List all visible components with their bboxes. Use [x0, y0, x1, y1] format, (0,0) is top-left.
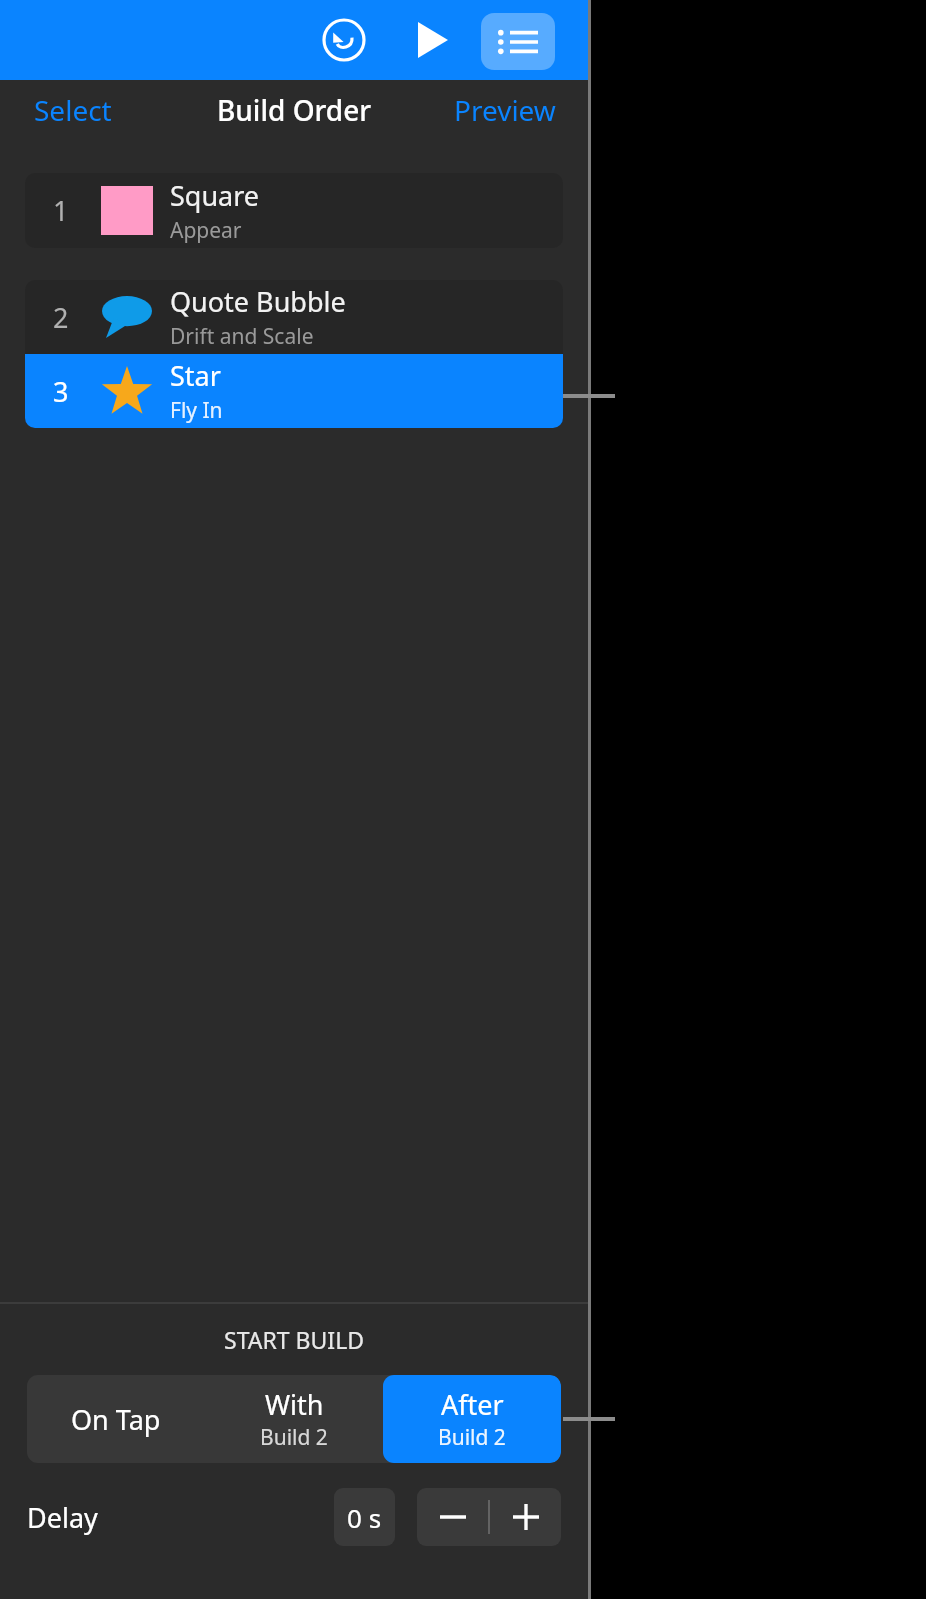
staticText: Drift and Scale [170, 322, 314, 351]
staticText: On Tap [71, 1401, 161, 1438]
staticText: 1 [53, 192, 69, 229]
button[interactable]: Select [16, 83, 130, 137]
button[interactable]: 1 [25, 173, 563, 248]
staticText: START BUILD [224, 1324, 364, 1355]
staticText: Fly In [170, 396, 223, 425]
button[interactable]: 0 s [334, 1488, 395, 1546]
button[interactable]: Decrease delay [417, 1488, 488, 1546]
button[interactable]: After [383, 1375, 561, 1463]
staticText: Delay [27, 1499, 98, 1536]
staticText: Star [170, 357, 221, 394]
button[interactable]: With [205, 1375, 383, 1463]
button[interactable]: On Tap [27, 1375, 205, 1463]
staticText: Select [34, 91, 112, 129]
staticText: Build Order [217, 91, 372, 129]
button[interactable]: 3 [25, 354, 563, 428]
staticText: After [441, 1386, 504, 1423]
staticText: Build 2 [260, 1423, 328, 1452]
button[interactable]: Play [409, 16, 457, 64]
staticText: 0 s [347, 1500, 382, 1535]
staticText: Build 2 [438, 1423, 506, 1452]
staticText: Preview [454, 91, 556, 129]
staticText: Square [170, 177, 260, 214]
staticText: 2 [53, 299, 69, 336]
button[interactable]: Increase delay [490, 1488, 561, 1546]
button[interactable]: Undo [318, 14, 370, 66]
button[interactable]: 2 [25, 280, 563, 354]
staticText: Quote Bubble [170, 283, 346, 320]
button[interactable]: Preview [436, 83, 574, 137]
staticText: 3 [53, 373, 69, 410]
staticText: With [265, 1386, 324, 1423]
staticText: Appear [170, 216, 242, 245]
button[interactable]: Build order list [481, 13, 555, 70]
